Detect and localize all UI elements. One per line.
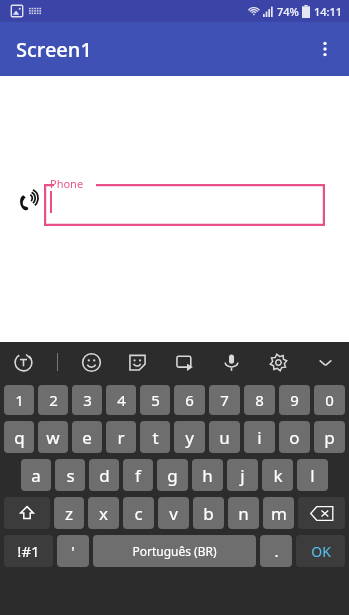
staticText: 3 bbox=[83, 390, 92, 410]
button[interactable]: l bbox=[297, 459, 328, 491]
button[interactable]: 7 bbox=[209, 385, 240, 415]
staticText: u bbox=[219, 426, 230, 449]
button[interactable]: Emoji bbox=[68, 342, 114, 382]
button[interactable]: b bbox=[193, 497, 224, 529]
button[interactable]: k bbox=[262, 459, 293, 491]
staticText: 5 bbox=[151, 390, 160, 410]
staticText: x bbox=[99, 502, 108, 525]
staticText: z bbox=[65, 502, 73, 525]
button[interactable]: GIF bbox=[161, 342, 208, 382]
button[interactable]: More options bbox=[301, 25, 349, 73]
button[interactable]: 4 bbox=[106, 385, 136, 415]
button[interactable]: p bbox=[314, 421, 345, 453]
button[interactable]: c bbox=[123, 497, 154, 529]
button[interactable]: Voice input bbox=[208, 342, 255, 382]
staticText: 7 bbox=[220, 390, 229, 410]
staticText: Phone bbox=[50, 176, 84, 191]
staticText: 14:11 bbox=[314, 4, 343, 19]
button[interactable]: OK bbox=[296, 535, 345, 567]
button[interactable]: Collapse bbox=[302, 342, 349, 382]
button[interactable]: Translate bbox=[0, 342, 46, 382]
button[interactable]: z bbox=[54, 497, 84, 529]
staticText: q bbox=[14, 426, 25, 449]
staticText: s bbox=[66, 464, 75, 487]
button[interactable]: v bbox=[158, 497, 189, 529]
button[interactable]: 8 bbox=[244, 385, 275, 415]
button[interactable]: 5 bbox=[140, 385, 170, 415]
staticText: Screen1 bbox=[16, 36, 92, 63]
staticText: f bbox=[135, 464, 141, 487]
staticText: m bbox=[271, 502, 287, 525]
button[interactable]: m bbox=[263, 497, 294, 529]
staticText: h bbox=[202, 464, 213, 487]
staticText: y bbox=[185, 426, 194, 449]
button[interactable]: n bbox=[228, 497, 259, 529]
staticText: l bbox=[310, 464, 315, 487]
staticText: 74% bbox=[277, 4, 299, 19]
button[interactable]: j bbox=[227, 459, 258, 491]
staticText: . bbox=[274, 541, 279, 561]
staticText: i bbox=[257, 426, 262, 449]
button[interactable]: q bbox=[4, 421, 34, 453]
staticText: 1 bbox=[15, 390, 24, 410]
staticText: 2 bbox=[49, 390, 58, 410]
staticText: !#1 bbox=[17, 541, 40, 561]
button[interactable]: u bbox=[209, 421, 240, 453]
staticText: 9 bbox=[290, 390, 299, 410]
staticText: j bbox=[240, 464, 245, 487]
button[interactable]: w bbox=[38, 421, 68, 453]
button[interactable]: Stickers bbox=[114, 342, 161, 382]
button[interactable]: a bbox=[21, 459, 51, 491]
staticText: 0 bbox=[325, 390, 334, 410]
button[interactable]: o bbox=[279, 421, 310, 453]
button[interactable]: g bbox=[157, 459, 188, 491]
staticText: OK bbox=[311, 542, 331, 561]
button[interactable]: Shift bbox=[4, 497, 50, 529]
button[interactable]: 9 bbox=[279, 385, 310, 415]
button[interactable]: 6 bbox=[174, 385, 205, 415]
staticText: n bbox=[238, 502, 249, 525]
button[interactable]: Português (BR) bbox=[93, 535, 256, 567]
button[interactable]: . bbox=[260, 535, 292, 567]
button[interactable]: 3 bbox=[72, 385, 102, 415]
staticText: k bbox=[273, 464, 283, 487]
staticText: t bbox=[152, 426, 159, 449]
staticText: b bbox=[203, 502, 214, 525]
button[interactable]: Backspace bbox=[298, 497, 345, 529]
staticText: d bbox=[99, 464, 110, 487]
staticText: Português (BR) bbox=[132, 543, 217, 559]
staticText: w bbox=[46, 426, 60, 449]
button[interactable]: Settings bbox=[255, 342, 302, 382]
button[interactable]: !#1 bbox=[4, 535, 53, 567]
staticText: g bbox=[167, 464, 178, 487]
button[interactable]: y bbox=[174, 421, 205, 453]
staticText: a bbox=[31, 464, 41, 487]
staticText: 4 bbox=[117, 390, 126, 410]
button[interactable]: ' bbox=[57, 535, 89, 567]
staticText: 8 bbox=[255, 390, 264, 410]
staticText: c bbox=[134, 502, 143, 525]
button[interactable]: h bbox=[192, 459, 223, 491]
button[interactable]: s bbox=[55, 459, 85, 491]
staticText: o bbox=[289, 426, 300, 449]
button[interactable]: r bbox=[106, 421, 136, 453]
button[interactable] bbox=[44, 184, 325, 226]
button[interactable]: 2 bbox=[38, 385, 68, 415]
button[interactable]: d bbox=[89, 459, 119, 491]
button[interactable]: 0 bbox=[314, 385, 345, 415]
button[interactable]: i bbox=[244, 421, 275, 453]
staticText: 6 bbox=[185, 390, 194, 410]
button[interactable]: f bbox=[123, 459, 153, 491]
staticText: ' bbox=[71, 541, 75, 561]
staticText: v bbox=[169, 502, 178, 525]
staticText: e bbox=[82, 426, 92, 449]
staticText: r bbox=[117, 426, 125, 449]
button[interactable]: t bbox=[140, 421, 170, 453]
button[interactable]: e bbox=[72, 421, 102, 453]
staticText: p bbox=[324, 426, 335, 449]
button[interactable]: x bbox=[88, 497, 119, 529]
button[interactable]: 1 bbox=[4, 385, 34, 415]
